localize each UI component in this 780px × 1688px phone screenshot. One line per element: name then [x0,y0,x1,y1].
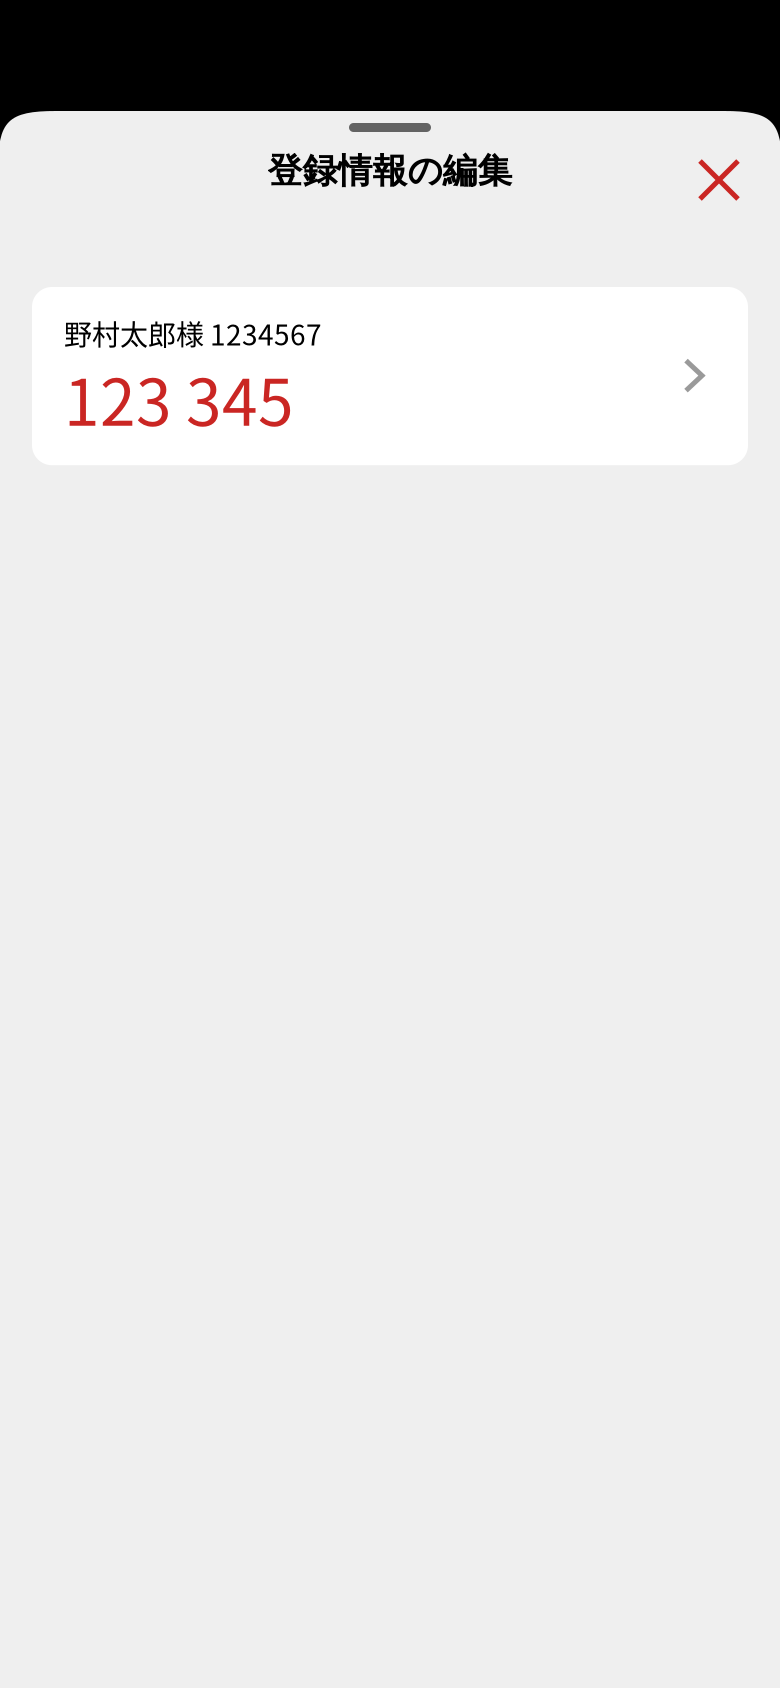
button[interactable]: 野村太郎様 1234567 [32,287,748,465]
button[interactable]: 閉じる [688,149,750,211]
staticText: 登録情報の編集 [267,149,512,193]
staticText: 野村太郎様 1234567 [64,313,322,353]
staticText: 123 345 [64,351,294,444]
